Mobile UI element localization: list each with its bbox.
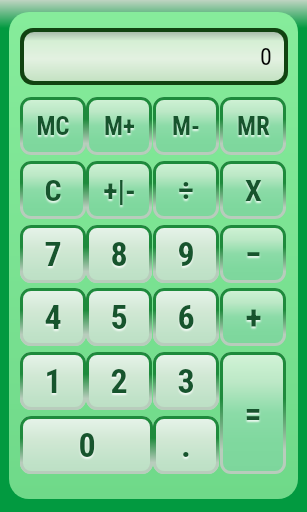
button[interactable]: 8 bbox=[86, 225, 152, 283]
button[interactable]: 5 bbox=[86, 288, 152, 346]
button[interactable]: 2 bbox=[86, 352, 152, 410]
staticText: 3 bbox=[177, 361, 195, 401]
button[interactable]: 9 bbox=[153, 225, 219, 283]
staticText: X bbox=[245, 173, 262, 208]
staticText: + bbox=[245, 297, 262, 337]
button[interactable]: 7 bbox=[20, 225, 86, 283]
staticText: 0 bbox=[260, 43, 272, 71]
staticText: M- bbox=[172, 112, 200, 141]
staticText: 5 bbox=[110, 297, 128, 337]
button[interactable]: MC bbox=[20, 97, 86, 155]
button[interactable]: MR bbox=[220, 97, 286, 155]
staticText: 1 bbox=[44, 361, 62, 401]
button[interactable]: C bbox=[20, 161, 86, 219]
button[interactable]: + bbox=[220, 288, 286, 346]
staticText: MC bbox=[36, 112, 70, 141]
staticText: 4 bbox=[44, 297, 62, 337]
button[interactable]: 0 bbox=[20, 416, 153, 474]
button[interactable]: X bbox=[220, 161, 286, 219]
staticText: 8 bbox=[110, 234, 128, 274]
staticText: 0 bbox=[78, 425, 96, 465]
button[interactable]: 6 bbox=[153, 288, 219, 346]
staticText: . bbox=[181, 425, 191, 465]
staticText: MR bbox=[237, 112, 270, 141]
staticText: 6 bbox=[177, 297, 195, 337]
button[interactable]: 4 bbox=[20, 288, 86, 346]
staticText: 7 bbox=[44, 234, 62, 274]
button[interactable]: 3 bbox=[153, 352, 219, 410]
staticText: 2 bbox=[110, 361, 128, 401]
staticText: − bbox=[245, 234, 262, 274]
button[interactable]: M- bbox=[153, 97, 219, 155]
button[interactable]: M+ bbox=[86, 97, 152, 155]
button[interactable]: 1 bbox=[20, 352, 86, 410]
button[interactable]: . bbox=[153, 416, 219, 474]
button[interactable]: ÷ bbox=[153, 161, 219, 219]
staticText: = bbox=[244, 393, 262, 433]
button[interactable]: − bbox=[220, 225, 286, 283]
button[interactable]: = bbox=[220, 352, 286, 474]
staticText: ÷ bbox=[178, 171, 194, 209]
staticText: 9 bbox=[177, 234, 195, 274]
staticText: M+ bbox=[104, 112, 135, 141]
button[interactable]: +|- bbox=[86, 161, 152, 219]
staticText: C bbox=[44, 173, 62, 208]
staticText: +|- bbox=[103, 173, 136, 208]
